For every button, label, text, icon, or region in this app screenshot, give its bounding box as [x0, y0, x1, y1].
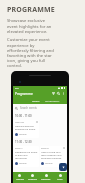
staticText: 10:00 - 11:00	[15, 114, 32, 118]
staticText: Customize your event experience by effor…	[7, 37, 55, 68]
staticText: Speaker	[19, 162, 27, 165]
button[interactable]: Program	[26, 172, 39, 183]
button[interactable]: TOMORROW	[45, 99, 60, 102]
button[interactable]: Search	[57, 92, 60, 95]
staticText: Speakers	[41, 178, 51, 181]
staticText: Opening keynote: Building the future	[15, 125, 38, 131]
button[interactable]: More options	[62, 92, 65, 95]
staticText: Search events	[20, 106, 37, 110]
button[interactable]: TODAY	[32, 99, 40, 102]
button[interactable]: Room A	[14, 146, 39, 167]
staticText: Agenda	[16, 178, 24, 181]
button[interactable]: Agenda	[13, 172, 26, 183]
staticText: Programme	[15, 92, 33, 96]
staticText: Main hall	[15, 121, 36, 124]
staticText: Speaker	[45, 162, 53, 165]
staticText: Speaker	[19, 133, 27, 136]
staticText: How to bring your team together and grow…	[41, 151, 65, 160]
staticText: PROGRAMME	[7, 5, 55, 15]
button[interactable]: Search events	[15, 104, 65, 112]
staticText: Showcase exclusive event highlights for …	[7, 18, 55, 34]
button[interactable]: Add event	[59, 163, 67, 171]
staticText: Room A	[15, 147, 38, 150]
staticText: Designing the future of data and technol…	[15, 151, 38, 160]
button[interactable]: Room B	[40, 146, 66, 167]
staticText: Program	[28, 178, 37, 181]
button[interactable]: Speakers	[39, 172, 53, 183]
button[interactable]: Filter	[52, 92, 55, 95]
staticText: 9:41	[15, 87, 20, 90]
button[interactable]: Main hall	[14, 120, 39, 138]
staticText: More	[57, 178, 63, 181]
staticText: Room B	[41, 147, 63, 150]
button[interactable]: More	[53, 172, 67, 183]
staticText: 11:30 - 12:30	[15, 140, 32, 144]
